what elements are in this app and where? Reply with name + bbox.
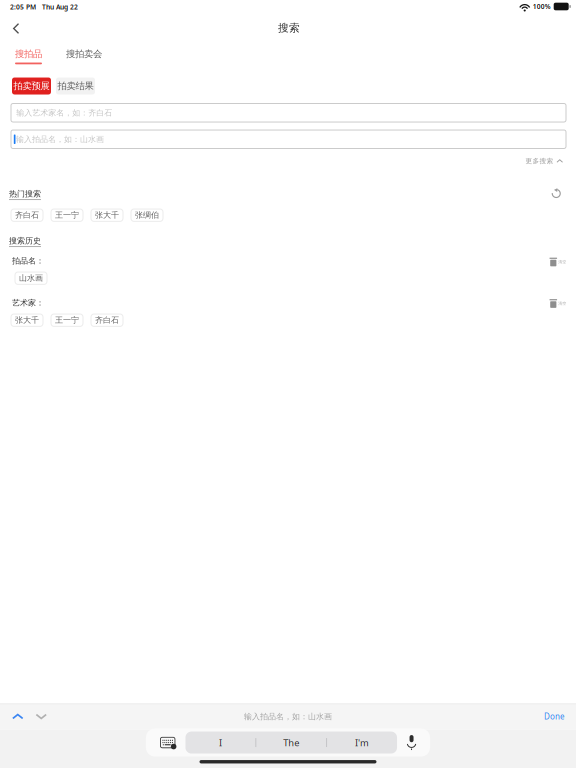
staticText: 输入拍品名，如：山水画	[244, 712, 332, 721]
button[interactable]: Back	[6, 17, 26, 40]
button[interactable]: I'm	[327, 731, 397, 753]
staticText: 2:05 PM	[10, 3, 36, 11]
button[interactable]: 拍卖预展	[12, 77, 51, 94]
staticText: 张大千	[95, 210, 119, 220]
button[interactable]: Clear auction item history	[549, 256, 566, 268]
staticText: 拍卖预展	[13, 80, 49, 92]
button[interactable]: 齐白石	[11, 209, 43, 221]
button[interactable]: 王一宁	[51, 209, 83, 221]
button[interactable]: Previous field	[6, 706, 29, 727]
staticText: 齐白石	[15, 210, 39, 220]
staticText: 拍品名：	[12, 256, 44, 266]
staticText: 100%	[533, 2, 551, 11]
button[interactable]: 输入拍品名，如：山水画	[11, 130, 566, 148]
button[interactable]: 输入艺术家名，如：齐白石	[11, 103, 566, 122]
staticText: 王一宁	[55, 210, 79, 220]
button[interactable]: 搜拍卖会	[66, 48, 102, 64]
button[interactable]: The	[256, 731, 326, 753]
staticText: 王一宁	[55, 315, 79, 325]
staticText: 搜索历史	[9, 236, 41, 246]
staticText: Thu Aug 22	[42, 3, 78, 11]
staticText: 热门搜索	[9, 189, 41, 199]
staticText: 搜索	[278, 21, 300, 35]
staticText: 张绸伯	[135, 210, 159, 220]
button[interactable]: Done	[539, 704, 570, 729]
staticText: 更多搜索	[525, 157, 553, 165]
staticText: I'm	[355, 736, 369, 749]
staticText: 清空	[558, 301, 566, 306]
button[interactable]: 拍卖结果	[56, 77, 95, 94]
staticText: 输入拍品名，如：山水画	[16, 134, 104, 144]
staticText: 齐白石	[95, 315, 119, 325]
staticText: Done	[544, 711, 565, 722]
button[interactable]: 搜拍品	[15, 48, 42, 64]
button[interactable]: 更多搜索	[525, 154, 563, 168]
button[interactable]: Clear artist history	[549, 297, 566, 309]
staticText: 搜拍卖会	[66, 48, 102, 60]
staticText: 艺术家：	[12, 298, 44, 308]
staticText: 拍卖结果	[57, 80, 93, 92]
button[interactable]: 山水画	[15, 272, 47, 284]
staticText: 清空	[558, 259, 566, 264]
button[interactable]: 张绸伯	[131, 209, 163, 221]
staticText: I	[219, 736, 222, 749]
button[interactable]: 张大千	[91, 209, 123, 221]
staticText: 张大千	[15, 315, 39, 325]
button[interactable]: Refresh	[551, 188, 561, 197]
button[interactable]: 齐白石	[91, 314, 123, 326]
button[interactable]: 张大千	[11, 314, 43, 326]
button[interactable]: 王一宁	[51, 314, 83, 326]
staticText: 搜拍品	[15, 48, 42, 60]
button[interactable]: Dictate	[397, 734, 426, 750]
staticText: The	[283, 736, 299, 749]
staticText: 输入艺术家名，如：齐白石	[16, 108, 112, 118]
button[interactable]: Next field	[29, 706, 53, 727]
button[interactable]: I	[185, 731, 255, 753]
button[interactable]: Keyboard	[150, 736, 185, 749]
staticText: 山水画	[19, 273, 43, 283]
